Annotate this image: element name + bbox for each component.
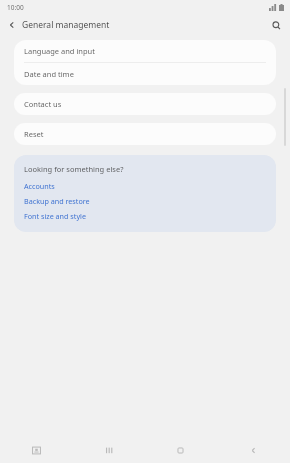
button[interactable]: Reset (14, 123, 276, 145)
button[interactable]: Date and time (14, 63, 276, 85)
staticText: Language and input (24, 46, 95, 56)
button[interactable]: Backup and restore (24, 196, 266, 206)
button[interactable]: Keyboard (0, 437, 72, 463)
staticText: Font size and style (24, 211, 86, 221)
staticText: Contact us (24, 99, 62, 109)
button[interactable]: Back (3, 16, 21, 34)
staticText: Reset (24, 129, 44, 139)
staticText: Looking for something else? (24, 164, 124, 174)
button[interactable]: Font size and style (24, 211, 266, 221)
button[interactable]: Contact us (14, 93, 276, 115)
staticText: Accounts (24, 181, 55, 191)
button[interactable]: Recent apps (72, 437, 144, 463)
staticText: 10:00 (7, 3, 24, 12)
button[interactable]: Search (267, 16, 285, 34)
button[interactable]: Language and input (14, 40, 276, 62)
button[interactable]: Accounts (24, 181, 266, 191)
staticText: General management (22, 19, 110, 31)
staticText: Date and time (24, 69, 74, 79)
button[interactable]: Home (144, 437, 217, 463)
staticText: Backup and restore (24, 196, 90, 206)
